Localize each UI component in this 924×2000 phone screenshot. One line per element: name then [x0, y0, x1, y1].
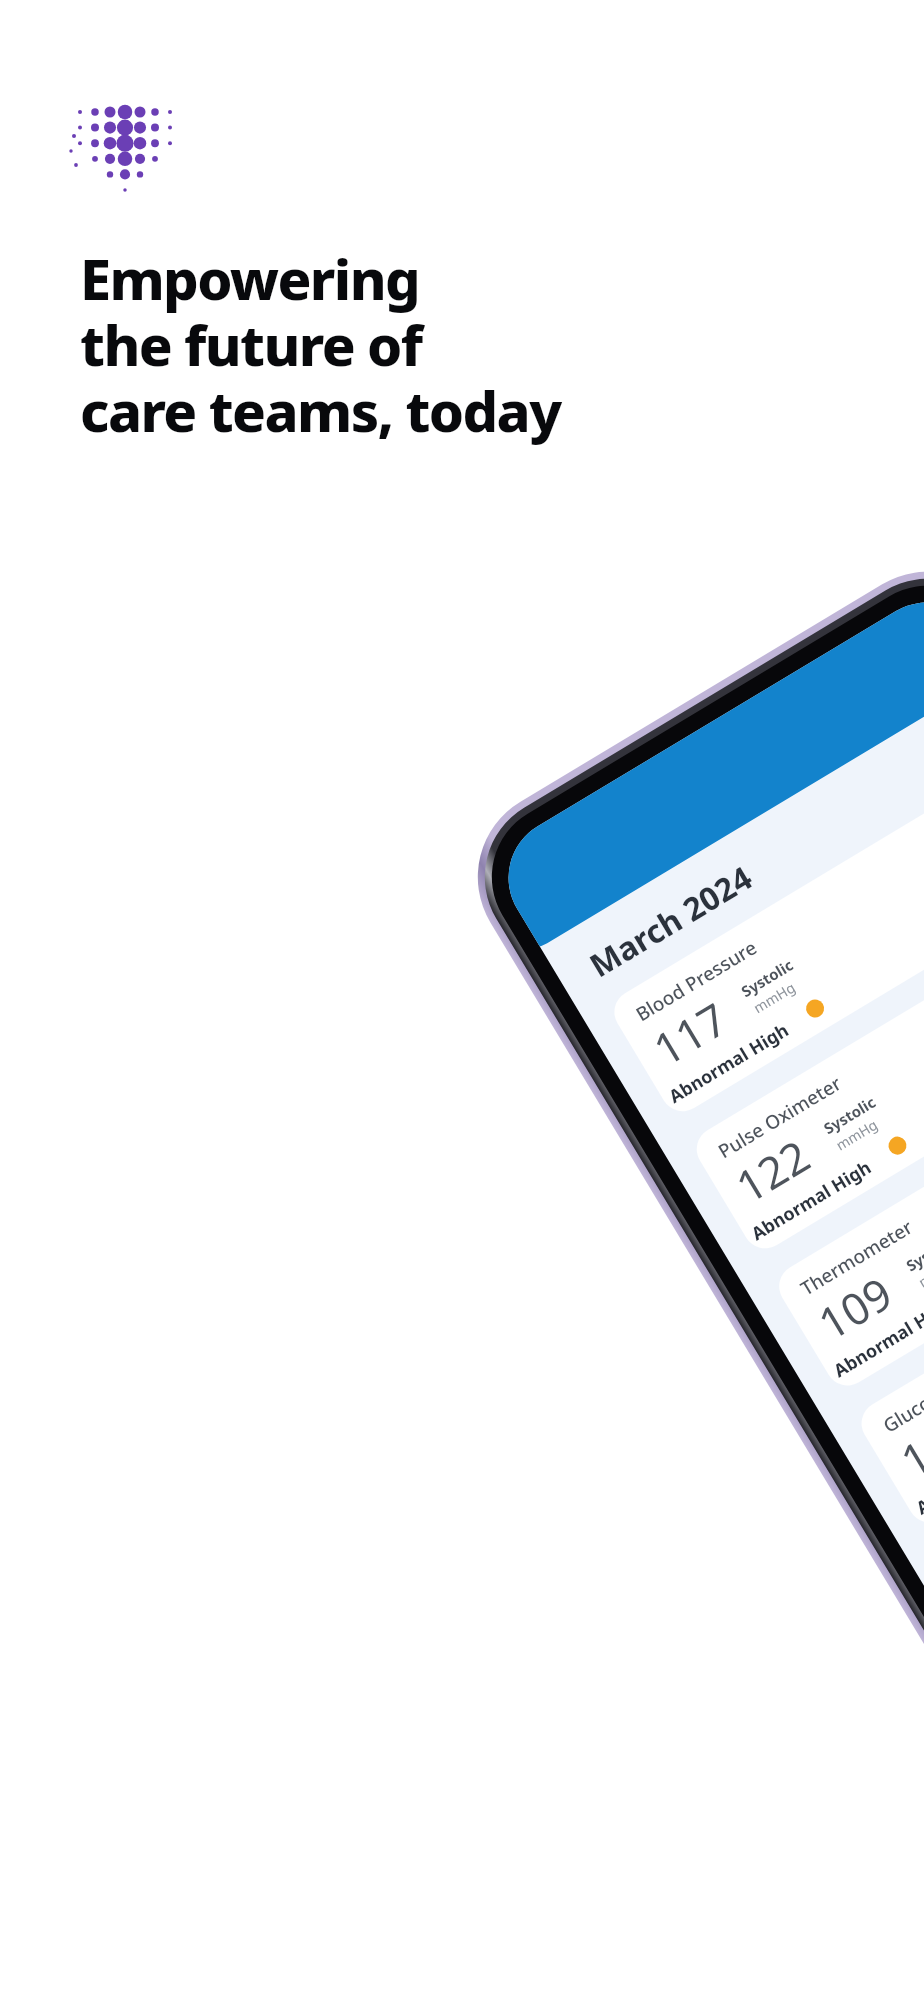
button[interactable]: Profile [524, 736, 572, 784]
